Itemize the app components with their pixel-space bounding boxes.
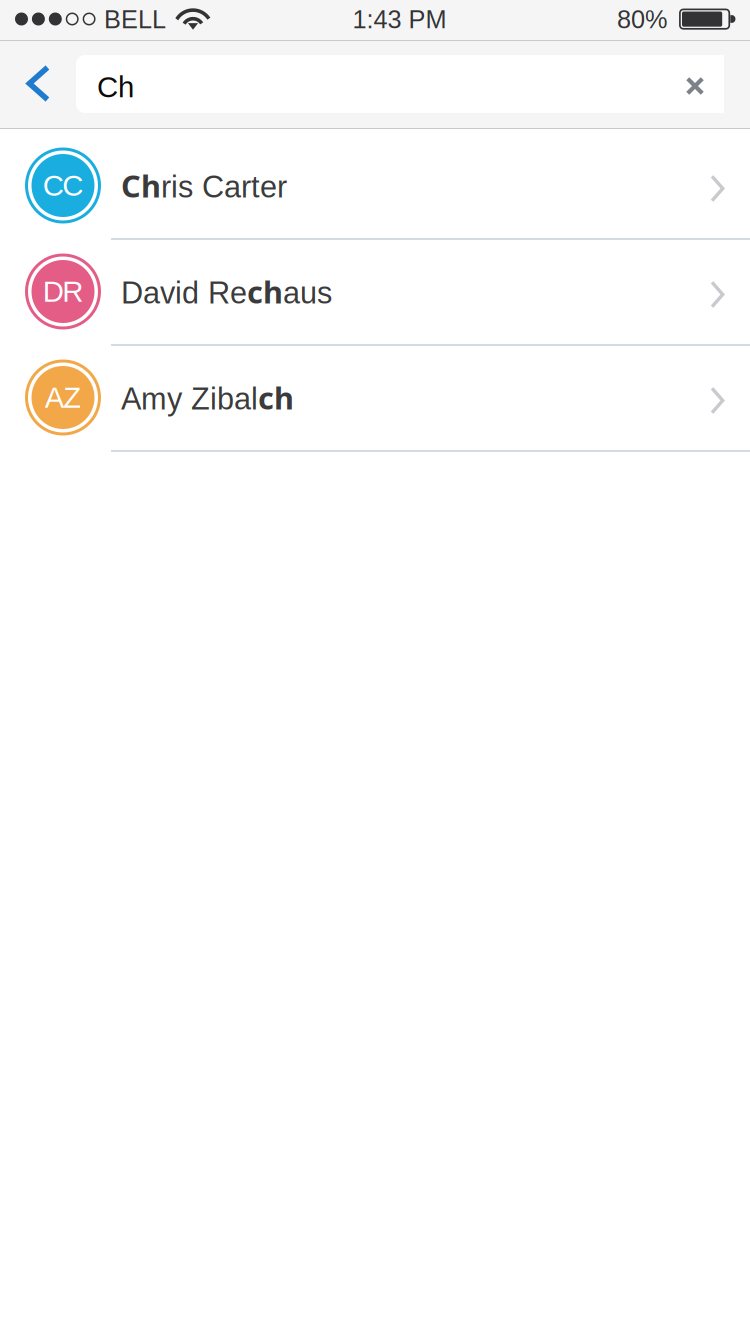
staticText: BELL (104, 5, 166, 34)
button[interactable]: AZ (0, 346, 750, 452)
staticText: 1:43 PM (352, 5, 446, 34)
staticText: AZ (45, 381, 81, 414)
staticText: 80% (617, 5, 668, 34)
staticText: CC (43, 169, 83, 202)
staticText: Chris Carter (121, 165, 287, 206)
staticText: DR (43, 275, 83, 308)
staticText: Amy Zibalch (121, 377, 294, 418)
button[interactable]: DR (0, 240, 750, 346)
button[interactable]: CC (0, 134, 750, 240)
button[interactable]: Clear search (666, 55, 724, 113)
staticText: Ch (97, 71, 134, 103)
staticText: David Rechaus (121, 271, 332, 312)
button[interactable]: Back (0, 41, 76, 129)
